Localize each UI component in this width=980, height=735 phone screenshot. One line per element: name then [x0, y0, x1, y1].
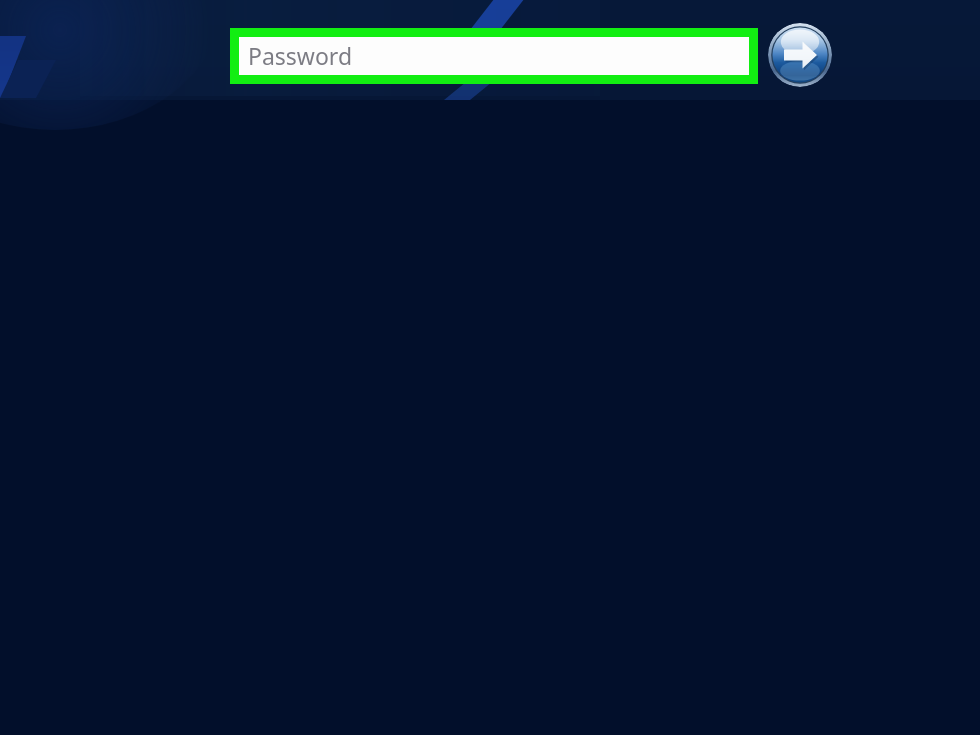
- button[interactable]: Submit password: [768, 23, 832, 87]
- staticText: Password: [248, 40, 353, 71]
- button[interactable]: Password: [230, 28, 758, 84]
